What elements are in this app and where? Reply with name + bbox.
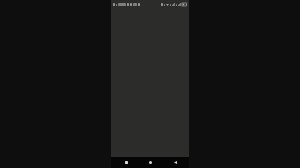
button[interactable]: Home — [140, 157, 160, 168]
button[interactable]: Recent apps — [116, 157, 136, 168]
button[interactable]: Back — [165, 157, 185, 168]
